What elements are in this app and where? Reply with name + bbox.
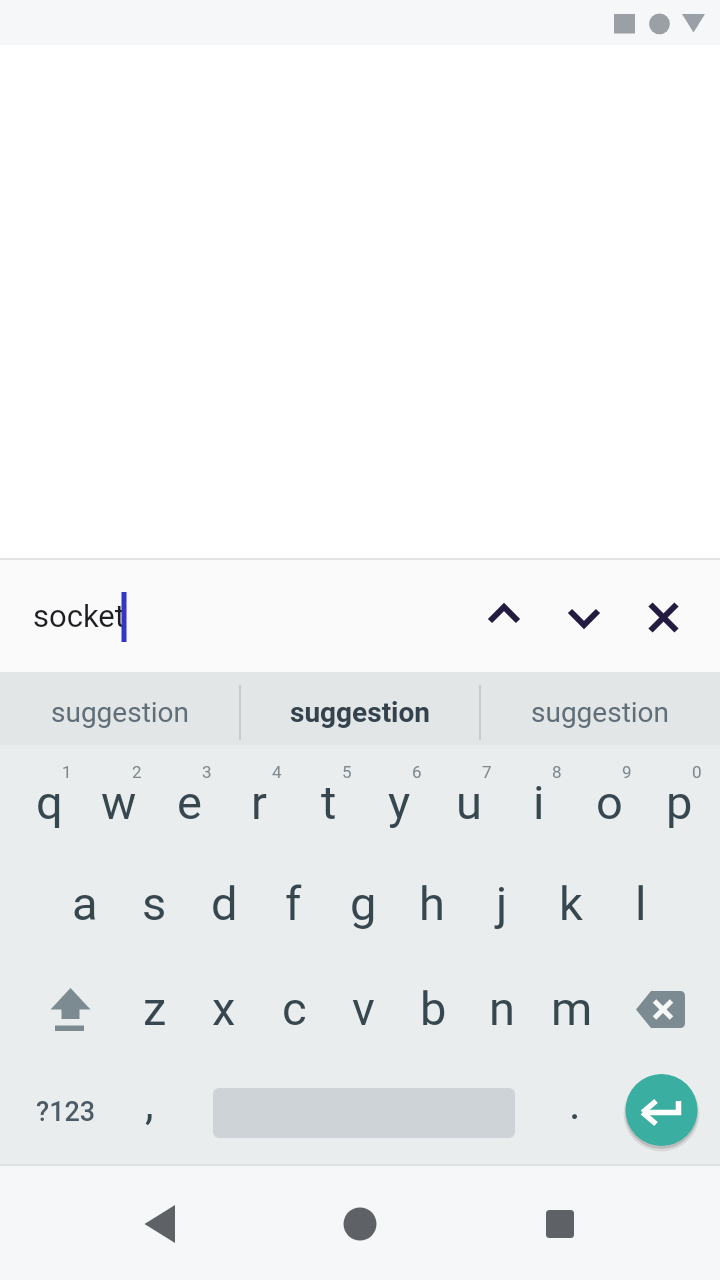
button[interactable]: ?123 [21,1067,111,1157]
button[interactable]: b [400,958,466,1058]
button[interactable]: g [330,853,396,953]
button[interactable]: n [469,958,535,1058]
staticText: suggestion [51,696,190,729]
button[interactable] [472,584,536,648]
button[interactable]: l [608,853,674,953]
button[interactable]: o [576,752,642,852]
staticText: m [551,981,593,1036]
staticText: socket [33,598,125,634]
staticText: z [143,981,167,1036]
staticText: a [72,876,98,931]
button[interactable]: e [156,752,222,852]
staticText: u [456,775,482,830]
staticText: 1 [62,762,72,782]
staticText: 5 [342,762,352,782]
button[interactable] [631,584,695,648]
button[interactable]: suggestion [1,676,239,749]
staticText: 4 [272,762,282,782]
button[interactable]: v [330,958,396,1058]
staticText: c [282,981,307,1036]
staticText: 9 [622,762,632,782]
button[interactable]: d [191,853,257,953]
button[interactable]: p [646,752,712,852]
button[interactable]: suggestion [241,676,479,749]
button[interactable]: q [16,752,82,852]
staticText: g [350,876,377,931]
staticText: h [419,876,445,931]
staticText: 2 [132,762,142,782]
button[interactable]: f [260,853,326,953]
button[interactable] [510,1173,610,1273]
button[interactable]: socket [33,590,193,642]
staticText: j [496,876,508,931]
staticText: n [489,981,515,1036]
staticText: y [388,775,411,830]
button[interactable] [625,1074,698,1147]
button[interactable]: r [226,752,292,852]
staticText: 6 [412,762,422,782]
button[interactable]: , [119,1059,179,1149]
staticText: b [420,981,447,1036]
button[interactable] [28,960,112,1056]
staticText: o [596,775,623,830]
staticText: e [177,775,202,830]
staticText: q [36,775,63,830]
staticText: , [145,1078,154,1130]
staticText: r [251,775,267,830]
button[interactable]: t [296,752,362,852]
staticText: . [569,1078,581,1130]
staticText: ?123 [36,1096,96,1128]
button[interactable]: s [121,853,187,953]
staticText: w [101,775,137,830]
staticText: k [559,876,583,931]
button[interactable]: z [122,958,188,1058]
staticText: suggestion [290,696,431,729]
button[interactable]: h [399,853,465,953]
button[interactable]: m [539,958,605,1058]
staticText: i [533,775,545,830]
staticText: 0 [692,762,702,782]
button[interactable]: j [469,853,535,953]
staticText: suggestion [531,696,670,729]
staticText: x [212,981,236,1036]
button[interactable]: i [506,752,572,852]
staticText: f [285,876,302,931]
button[interactable] [310,1173,410,1273]
button[interactable]: x [191,958,257,1058]
button[interactable] [110,1173,210,1273]
staticText: v [352,981,375,1036]
staticText: 8 [552,762,562,782]
staticText: l [635,876,647,931]
button[interactable]: w [86,752,152,852]
button[interactable]: k [538,853,604,953]
button[interactable]: a [52,853,118,953]
staticText: 7 [482,762,492,782]
staticText: p [666,775,693,830]
button[interactable] [618,960,702,1056]
staticText: t [321,775,337,830]
staticText: d [211,876,238,931]
button[interactable]: y [366,752,432,852]
staticText: s [142,876,167,931]
button[interactable]: . [545,1059,605,1149]
button[interactable] [552,584,616,648]
button[interactable]: u [436,752,502,852]
button[interactable]: c [261,958,327,1058]
button[interactable]: suggestion [481,676,719,749]
staticText: 3 [202,762,212,782]
